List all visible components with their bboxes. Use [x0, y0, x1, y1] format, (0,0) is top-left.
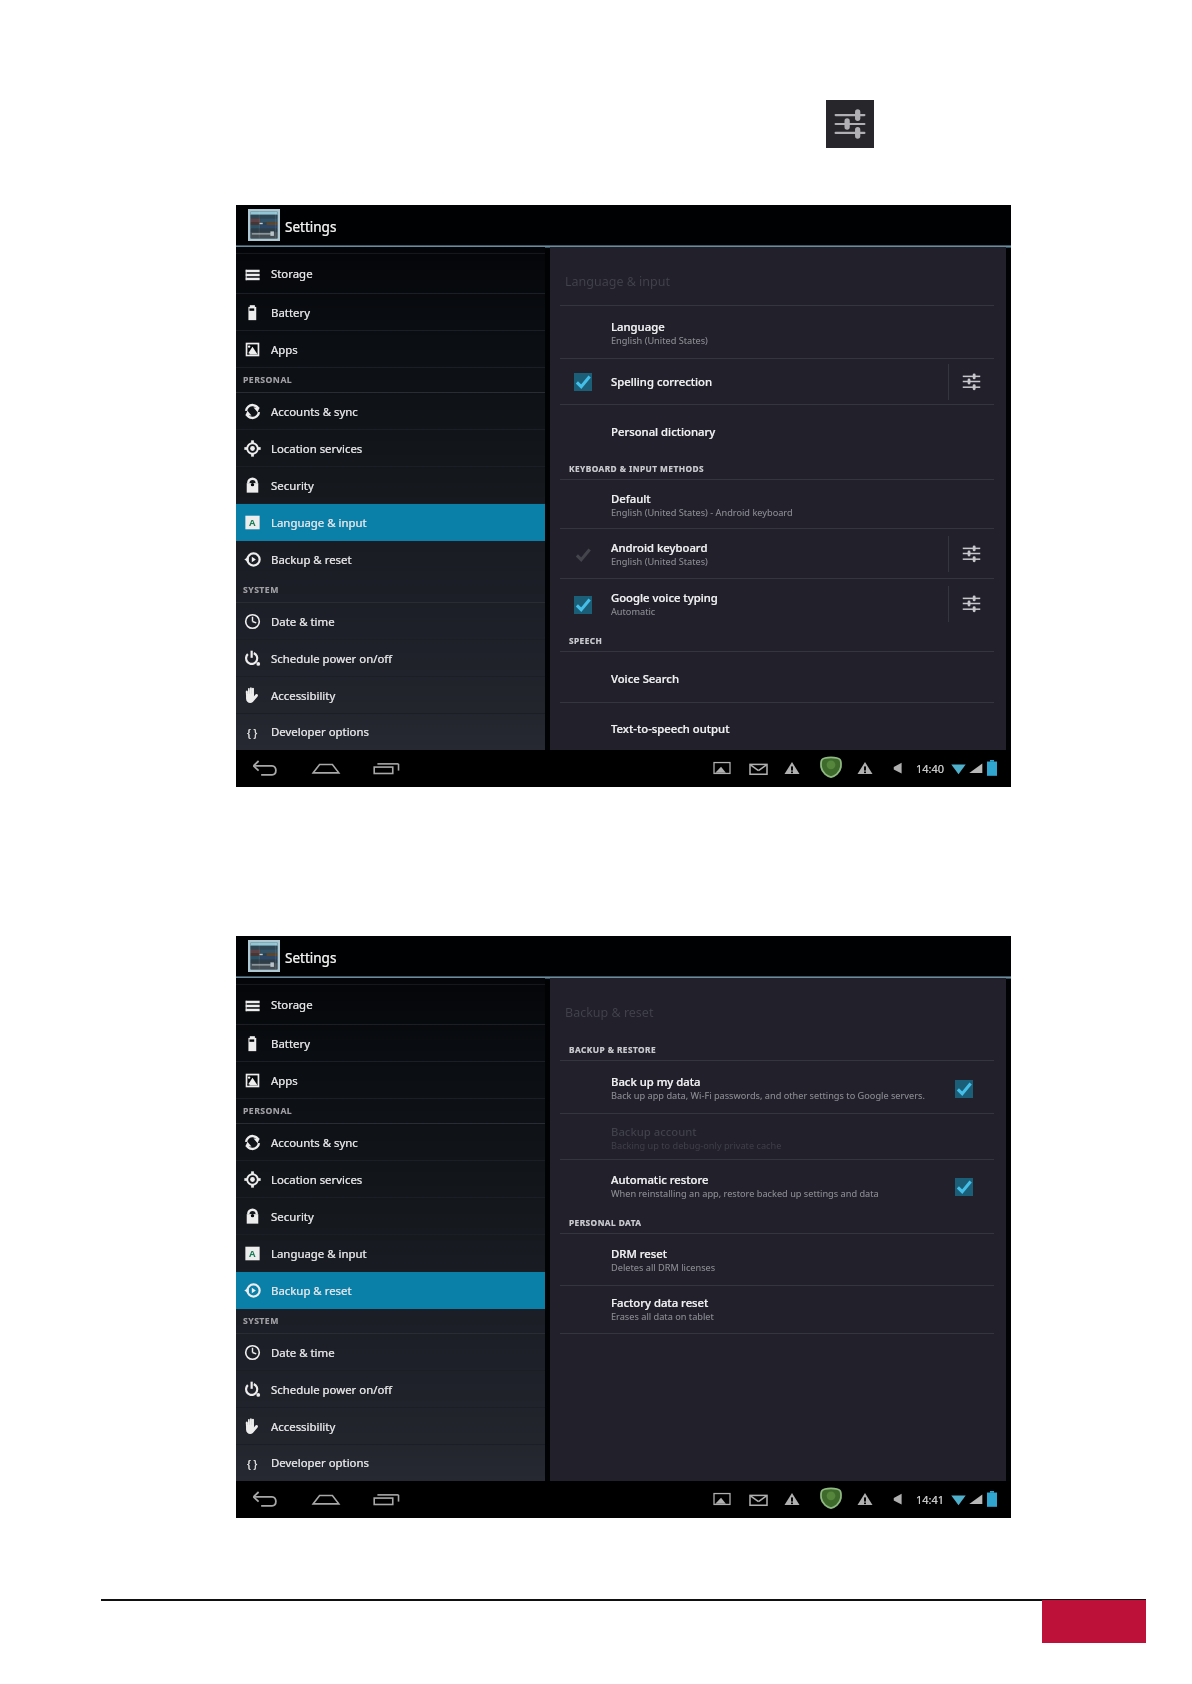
staticText: KEYBOARD & INPUT METHODS: [569, 463, 705, 474]
staticText: DRM reset: [611, 1246, 668, 1261]
button[interactable]: Location services: [236, 430, 545, 467]
button[interactable]: Voice Search: [550, 652, 1006, 703]
button[interactable]: Location services: [236, 1161, 545, 1198]
staticText: Security: [271, 478, 314, 494]
staticText: Developer options: [271, 1455, 369, 1471]
staticText: Developer options: [271, 724, 369, 740]
staticText: Backing up to debug-only private cache: [611, 1139, 782, 1152]
staticText: Back up app data, Wi-Fi passwords, and o…: [611, 1089, 925, 1102]
staticText: Backup & reset: [271, 1283, 352, 1299]
staticText: PERSONAL DATA: [569, 1217, 642, 1228]
button[interactable]: Home: [310, 1484, 342, 1516]
staticText: { }: [247, 1457, 258, 1471]
button[interactable]: Configure: [962, 544, 981, 563]
staticText: Language: [611, 319, 665, 334]
staticText: Spelling correction: [611, 374, 713, 389]
button[interactable]: Factory data reset: [550, 1286, 1006, 1334]
staticText: 14:40: [916, 761, 945, 776]
staticText: 14:41: [916, 1492, 945, 1507]
button[interactable]: Date & time: [236, 603, 545, 640]
staticText: Battery: [271, 305, 310, 321]
button[interactable]: Text-to-speech output: [550, 703, 1006, 748]
staticText: English (United States): [611, 555, 708, 568]
button[interactable]: Recent apps: [371, 753, 403, 785]
staticText: PERSONAL: [243, 1105, 293, 1117]
staticText: Factory data reset: [611, 1295, 709, 1310]
staticText: A: [249, 1247, 256, 1260]
button[interactable]: Automatic restore: [550, 1160, 1006, 1214]
staticText: Settings: [285, 949, 337, 967]
button[interactable]: Battery: [236, 1025, 545, 1062]
staticText: Schedule power on/off: [271, 651, 393, 667]
button[interactable]: Date & time: [236, 1334, 545, 1371]
button[interactable]: Accessibility: [236, 1408, 545, 1445]
button[interactable]: Default: [550, 480, 1006, 529]
staticText: SYSTEM: [243, 1315, 279, 1327]
staticText: Erases all data on tablet: [611, 1310, 714, 1323]
button[interactable]: Backup & reset: [236, 541, 545, 578]
staticText: Storage: [271, 266, 313, 282]
staticText: Automatic restore: [611, 1172, 709, 1187]
staticText: Settings: [285, 218, 337, 236]
button[interactable]: Language: [550, 306, 1006, 359]
button[interactable]: Android keyboard: [550, 529, 1006, 579]
staticText: Automatic: [611, 605, 656, 618]
button[interactable]: Home: [310, 753, 342, 785]
button[interactable]: Apps: [236, 331, 545, 368]
staticText: { }: [247, 726, 258, 740]
staticText: When reinstalling an app, restore backed…: [611, 1187, 879, 1200]
staticText: BACKUP & RESTORE: [569, 1044, 657, 1055]
button[interactable]: Schedule power on/off: [236, 640, 545, 677]
button[interactable]: Schedule power on/off: [236, 1371, 545, 1408]
staticText: Language & input: [565, 273, 670, 290]
button[interactable]: Storage: [236, 254, 545, 294]
staticText: Text-to-speech output: [611, 721, 730, 736]
button[interactable]: Apps: [236, 1062, 545, 1099]
button[interactable]: Recent apps: [371, 1484, 403, 1516]
button[interactable]: Back: [249, 753, 281, 785]
staticText: Language & input: [271, 1246, 367, 1262]
staticText: Backup & reset: [565, 1004, 654, 1021]
button[interactable]: Storage: [236, 985, 545, 1025]
staticText: Location services: [271, 441, 363, 457]
staticText: Language & input: [271, 515, 367, 531]
button[interactable]: Backup account: [550, 1114, 1006, 1160]
staticText: Security: [271, 1209, 314, 1225]
button[interactable]: A: [236, 1235, 545, 1272]
button[interactable]: Back up my data: [550, 1061, 1006, 1114]
button[interactable]: Configure: [962, 372, 981, 391]
staticText: Deletes all DRM licenses: [611, 1261, 716, 1274]
staticText: English (United States) - Android keyboa…: [611, 506, 793, 519]
button[interactable]: Backup & reset: [236, 1272, 545, 1309]
staticText: SPEECH: [569, 635, 603, 646]
button[interactable]: Battery: [236, 294, 545, 331]
staticText: Default: [611, 491, 651, 506]
button[interactable]: Configure: [962, 594, 981, 613]
button[interactable]: Settings: [826, 100, 874, 148]
staticText: Date & time: [271, 614, 335, 630]
button[interactable]: Spelling correction: [550, 359, 1006, 405]
button[interactable]: A: [236, 504, 545, 541]
button[interactable]: { }: [236, 1445, 545, 1481]
button[interactable]: { }: [236, 714, 545, 750]
staticText: Schedule power on/off: [271, 1382, 393, 1398]
button[interactable]: Back: [249, 1484, 281, 1516]
staticText: A: [249, 516, 256, 529]
button[interactable]: Security: [236, 467, 545, 504]
staticText: Android keyboard: [611, 540, 708, 555]
button[interactable]: Accessibility: [236, 677, 545, 714]
button[interactable]: Google voice typing: [550, 579, 1006, 629]
staticText: Accessibility: [271, 1419, 336, 1435]
staticText: Backup account: [611, 1124, 697, 1139]
staticText: Accounts & sync: [271, 1135, 358, 1151]
button[interactable]: Personal dictionary: [550, 405, 1006, 457]
staticText: Backup & reset: [271, 552, 352, 568]
button[interactable]: Accounts & sync: [236, 393, 545, 430]
staticText: Location services: [271, 1172, 363, 1188]
staticText: Back up my data: [611, 1074, 701, 1089]
button[interactable]: DRM reset: [550, 1234, 1006, 1286]
staticText: Personal dictionary: [611, 424, 716, 439]
button[interactable]: Accounts & sync: [236, 1124, 545, 1161]
button[interactable]: Security: [236, 1198, 545, 1235]
staticText: Apps: [271, 342, 298, 358]
